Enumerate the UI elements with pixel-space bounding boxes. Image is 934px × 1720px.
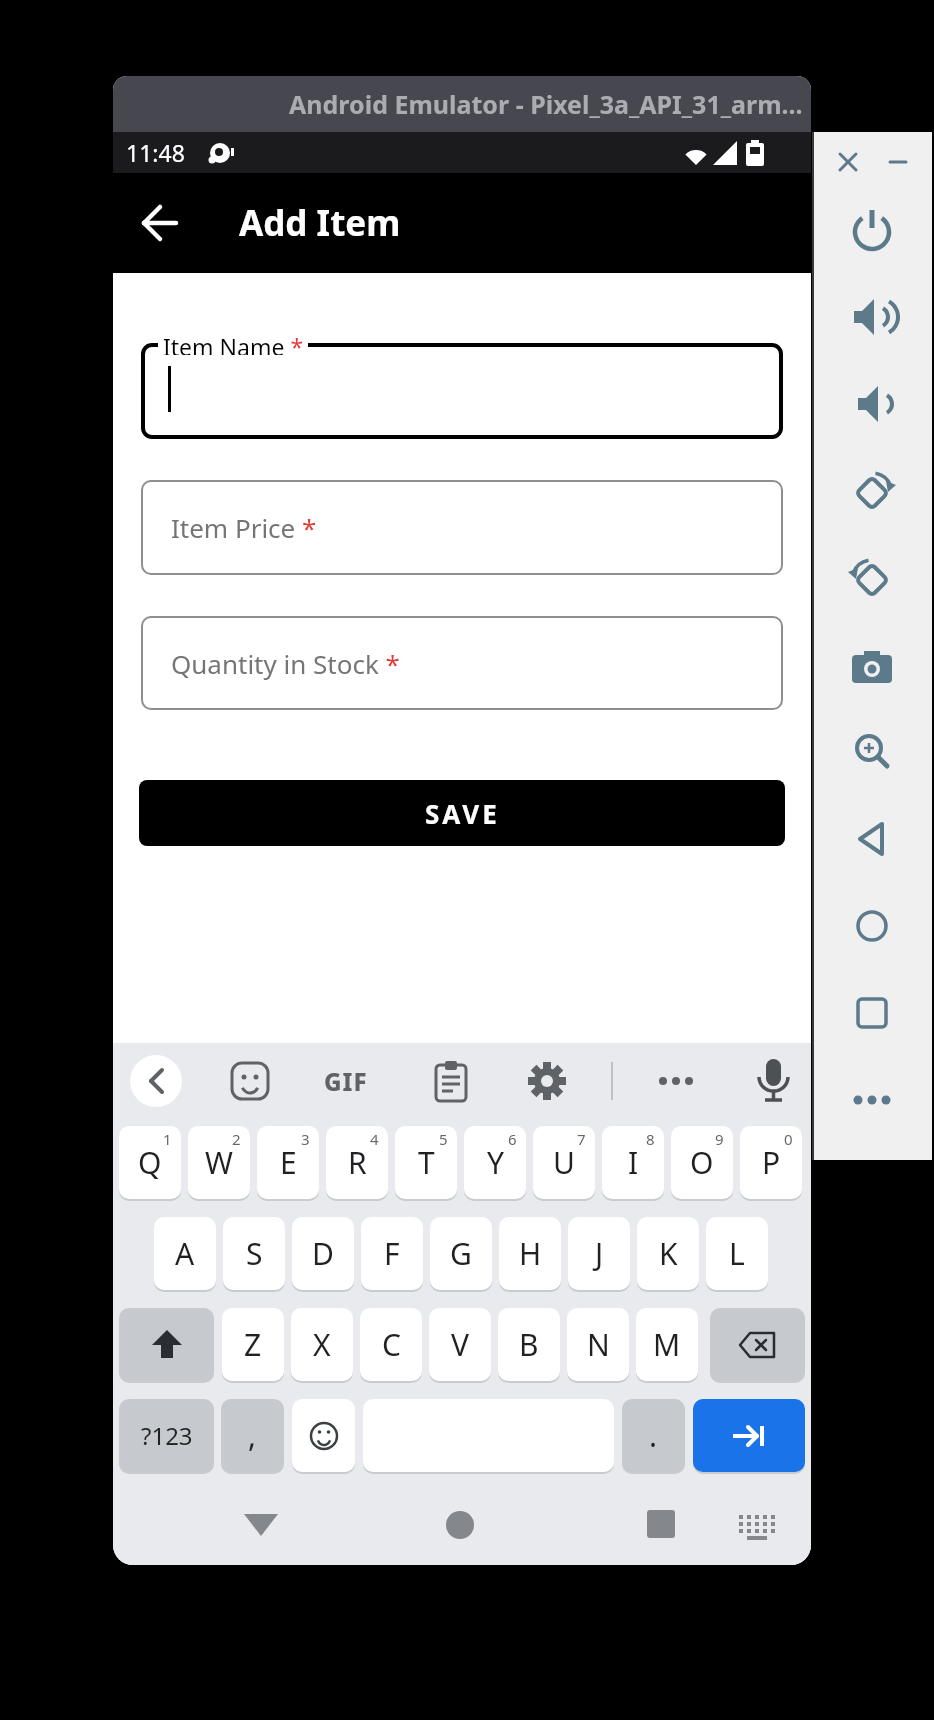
button[interactable]	[844, 550, 900, 606]
button[interactable]	[832, 146, 864, 178]
button[interactable]	[631, 1494, 691, 1554]
button[interactable]: Quantity in Stock *	[141, 616, 783, 710]
staticText: E	[280, 1142, 297, 1183]
button[interactable]: J	[568, 1217, 630, 1290]
staticText: 8	[646, 1129, 655, 1149]
button[interactable]: L	[706, 1217, 768, 1290]
staticText: Quantity in Stock *	[171, 646, 400, 681]
button[interactable]: T	[395, 1126, 457, 1199]
button[interactable]	[693, 1399, 805, 1472]
button[interactable]	[844, 376, 900, 432]
button[interactable]: V	[429, 1308, 491, 1381]
button[interactable]: W	[188, 1126, 250, 1199]
button[interactable]	[141, 343, 783, 439]
button[interactable]: O	[671, 1126, 733, 1199]
staticText: GIF	[324, 1065, 368, 1098]
staticText: 2	[232, 1129, 241, 1149]
staticText: N	[587, 1324, 610, 1365]
staticText: A	[175, 1233, 195, 1274]
button[interactable]	[710, 1308, 805, 1381]
staticText: S	[246, 1233, 263, 1274]
button[interactable]	[130, 1055, 182, 1107]
button[interactable]: GIF	[320, 1055, 372, 1107]
button[interactable]: P	[740, 1126, 802, 1199]
button[interactable]	[882, 146, 914, 178]
button[interactable]	[844, 811, 900, 867]
button[interactable]: G	[430, 1217, 492, 1290]
staticText: Item Price *	[171, 510, 317, 545]
button[interactable]	[727, 1495, 787, 1555]
button[interactable]: K	[637, 1217, 699, 1290]
staticText: K	[659, 1233, 678, 1274]
staticText: 4	[370, 1129, 379, 1149]
staticText: X	[313, 1324, 331, 1365]
staticText: 0	[784, 1129, 793, 1149]
button[interactable]: S	[223, 1217, 285, 1290]
staticText: 6	[508, 1129, 517, 1149]
button[interactable]: .	[622, 1399, 685, 1472]
button[interactable]: C	[360, 1308, 422, 1381]
staticText: 1	[163, 1129, 172, 1149]
button[interactable]	[844, 898, 900, 954]
staticText: 3	[301, 1129, 310, 1149]
button[interactable]: SAVE	[139, 780, 785, 846]
button[interactable]	[425, 1055, 477, 1107]
button[interactable]: N	[567, 1308, 629, 1381]
button[interactable]: U	[533, 1126, 595, 1199]
staticText: SAVE	[425, 796, 500, 831]
button[interactable]	[844, 202, 900, 258]
button[interactable]: ?123	[119, 1399, 214, 1472]
button[interactable]	[231, 1494, 291, 1554]
button[interactable]: M	[636, 1308, 698, 1381]
staticText: V	[451, 1324, 469, 1365]
staticText: Y	[487, 1142, 504, 1183]
staticText: M	[653, 1324, 681, 1365]
button[interactable]: I	[602, 1126, 664, 1199]
staticText: O	[690, 1142, 714, 1183]
staticText: B	[519, 1324, 539, 1365]
button[interactable]	[844, 289, 900, 345]
button[interactable]	[844, 1072, 900, 1128]
button[interactable]: D	[292, 1217, 354, 1290]
staticText: .	[649, 1415, 658, 1456]
button[interactable]	[844, 724, 900, 780]
button[interactable]	[224, 1055, 276, 1107]
button[interactable]	[292, 1399, 355, 1472]
staticText: P	[762, 1142, 781, 1183]
button[interactable]: R	[326, 1126, 388, 1199]
button[interactable]: Y	[464, 1126, 526, 1199]
staticText: C	[382, 1324, 401, 1365]
staticText: Q	[138, 1142, 162, 1183]
staticText: J	[595, 1233, 604, 1274]
staticText: H	[519, 1233, 542, 1274]
staticText: I	[628, 1142, 639, 1183]
button[interactable]: A	[154, 1217, 216, 1290]
button[interactable]: ,	[221, 1399, 284, 1472]
button[interactable]: X	[291, 1308, 353, 1381]
button[interactable]	[747, 1055, 799, 1107]
staticText: Android Emulator - Pixel_3a_API_31_arm..…	[289, 87, 803, 121]
staticText: L	[729, 1233, 745, 1274]
button[interactable]: H	[499, 1217, 561, 1290]
button[interactable]: B	[498, 1308, 560, 1381]
button[interactable]	[430, 1495, 490, 1555]
button[interactable]	[130, 193, 190, 253]
button[interactable]: Item Price *	[141, 480, 783, 575]
button[interactable]	[844, 985, 900, 1041]
staticText: T	[418, 1142, 435, 1183]
button[interactable]: E	[257, 1126, 319, 1199]
button[interactable]	[650, 1055, 702, 1107]
staticText: ,	[248, 1415, 257, 1456]
staticText: Item Name *	[163, 331, 304, 355]
staticText: ?123	[141, 1419, 193, 1452]
button[interactable]: F	[361, 1217, 423, 1290]
button[interactable]	[521, 1055, 573, 1107]
staticText: F	[384, 1233, 400, 1274]
button[interactable]	[844, 463, 900, 519]
button[interactable]: Z	[222, 1308, 284, 1381]
button[interactable]	[119, 1308, 214, 1381]
button[interactable]: Q	[119, 1126, 181, 1199]
button[interactable]	[844, 637, 900, 693]
staticText: D	[312, 1233, 334, 1274]
